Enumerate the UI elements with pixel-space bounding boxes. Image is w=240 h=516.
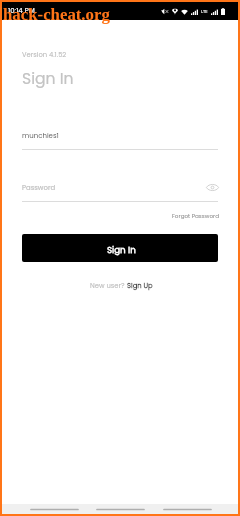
button[interactable]: Forgot Password xyxy=(22,212,220,220)
staticText: Sign In xyxy=(107,244,136,256)
button[interactable]: Show password xyxy=(206,183,219,192)
staticText: munchies1 xyxy=(22,131,59,141)
button[interactable]: Home xyxy=(97,504,144,514)
staticText: LTE xyxy=(201,9,208,14)
staticText: New user? xyxy=(90,281,127,291)
staticText: Forgot Password xyxy=(172,212,220,220)
staticText: hack-cheat.org xyxy=(3,5,110,24)
button[interactable]: Sign Up xyxy=(127,281,153,291)
button[interactable]: Recent apps xyxy=(164,504,211,514)
button[interactable]: Back xyxy=(31,504,78,514)
staticText: 10:14 PM xyxy=(8,6,35,16)
staticText: Version 4.1.52 xyxy=(22,50,67,59)
button[interactable]: Sign In xyxy=(22,234,218,262)
staticText: Password xyxy=(22,183,56,193)
staticText: Sign In xyxy=(22,68,74,90)
